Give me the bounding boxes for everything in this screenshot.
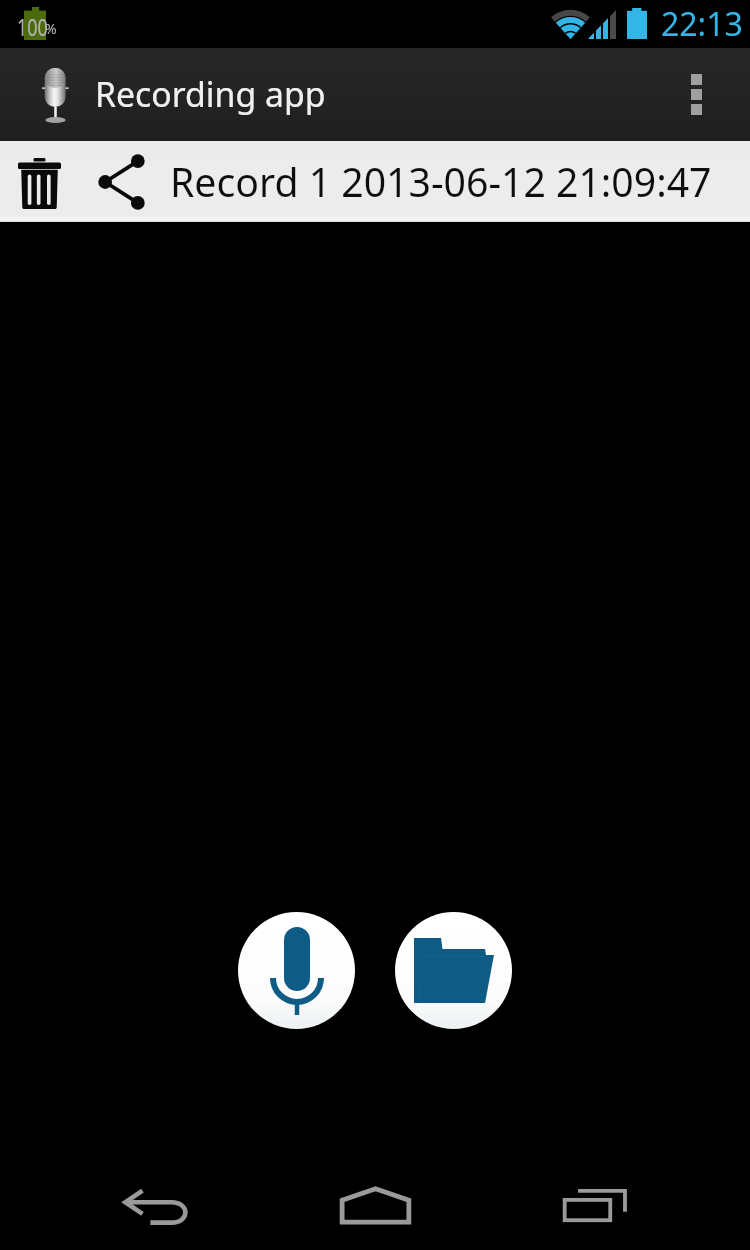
button[interactable]: Recent apps [540, 1157, 650, 1250]
button[interactable]: Delete recording [0, 141, 80, 222]
staticText: 100 [17, 11, 48, 42]
button[interactable]: More options [654, 48, 738, 141]
button[interactable]: Share recording [80, 141, 166, 222]
button[interactable]: Open recordings folder [395, 912, 512, 1029]
staticText: Record 1 2013-06-12 21:09:47 [170, 155, 712, 208]
staticText: Recording app [95, 71, 326, 117]
button[interactable]: Back [102, 1159, 212, 1250]
button[interactable]: Record [238, 912, 355, 1029]
button[interactable]: Delete recording [0, 141, 750, 222]
staticText: 22:13 [661, 2, 743, 46]
staticText: % [45, 19, 57, 38]
button[interactable]: Home [320, 1157, 430, 1250]
